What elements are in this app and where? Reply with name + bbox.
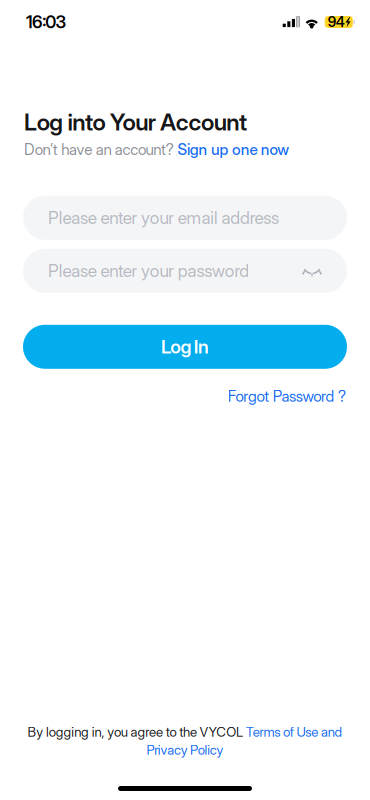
- staticText: 94: [328, 13, 345, 30]
- staticText: Sign up one now: [177, 140, 289, 159]
- staticText: Log In: [161, 335, 209, 358]
- button[interactable]: Forgot Password ?: [228, 387, 346, 405]
- button[interactable]: Sign up one now: [177, 140, 289, 159]
- button[interactable]: Terms of Use and: [246, 724, 342, 740]
- button[interactable]: Log In: [23, 325, 347, 369]
- button[interactable]: Privacy Policy: [146, 742, 223, 758]
- button[interactable]: Show password: [289, 249, 323, 292]
- staticText: Please enter your password: [48, 260, 249, 281]
- staticText: Log into Your Account: [24, 108, 247, 136]
- staticText: Don’t have an account?: [24, 140, 177, 159]
- staticText: By logging in, you agree to the VYCOL: [27, 724, 246, 740]
- staticText: Please enter your email address: [48, 207, 279, 228]
- staticText: Forgot Password ?: [228, 387, 346, 405]
- staticText: Privacy Policy: [146, 742, 223, 758]
- staticText: 16:03: [26, 11, 66, 32]
- staticText: Terms of Use and: [246, 724, 342, 740]
